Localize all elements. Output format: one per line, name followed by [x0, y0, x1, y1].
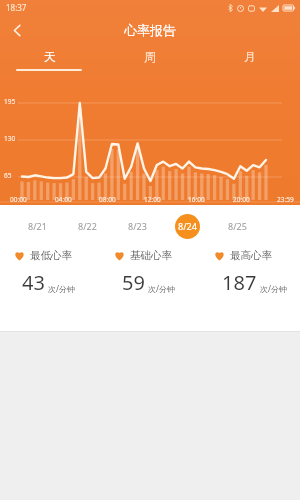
- staticText: 04:00: [55, 195, 72, 204]
- staticText: 基础心率: [130, 249, 172, 262]
- staticText: 8/25: [228, 220, 247, 232]
- staticText: 最高心率: [230, 249, 272, 262]
- button[interactable]: 周: [100, 45, 200, 78]
- button[interactable]: 8/25: [212, 212, 262, 240]
- staticText: 周: [144, 49, 156, 64]
- staticText: 次/分钟: [48, 283, 75, 294]
- staticText: 195: [4, 97, 16, 106]
- staticText: 8/24: [178, 220, 197, 232]
- staticText: 天: [44, 49, 56, 64]
- staticText: 心率报告: [124, 22, 176, 38]
- staticText: 43: [22, 269, 45, 296]
- button[interactable]: 月: [200, 45, 300, 78]
- staticText: 月: [244, 49, 256, 64]
- staticText: 最低心率: [30, 249, 72, 262]
- staticText: 次/分钟: [260, 283, 287, 294]
- button[interactable]: 8/22: [62, 212, 112, 240]
- staticText: 130: [4, 134, 16, 143]
- button[interactable]: Back: [0, 15, 34, 45]
- staticText: 8/22: [78, 220, 97, 232]
- staticText: 18:37: [6, 2, 27, 13]
- staticText: 8/23: [128, 220, 147, 232]
- staticText: 8/21: [28, 220, 47, 232]
- staticText: 16:00: [188, 195, 205, 204]
- staticText: 65: [4, 171, 12, 180]
- staticText: 23:59: [277, 195, 294, 204]
- staticText: 12:00: [144, 195, 161, 204]
- button[interactable]: 最高心率: [200, 249, 300, 296]
- staticText: 20:00: [233, 195, 250, 204]
- button[interactable]: 8/24: [162, 212, 212, 240]
- button[interactable]: 8/23: [112, 212, 162, 240]
- button[interactable]: 天: [0, 45, 100, 78]
- button[interactable]: 最低心率: [0, 249, 100, 296]
- button[interactable]: 基础心率: [100, 249, 200, 296]
- staticText: 00:00: [10, 195, 27, 204]
- staticText: 187: [222, 269, 257, 296]
- staticText: 次/分钟: [148, 283, 175, 294]
- button[interactable]: 8/21: [12, 212, 62, 240]
- staticText: 08:00: [99, 195, 116, 204]
- staticText: 59: [122, 269, 145, 296]
